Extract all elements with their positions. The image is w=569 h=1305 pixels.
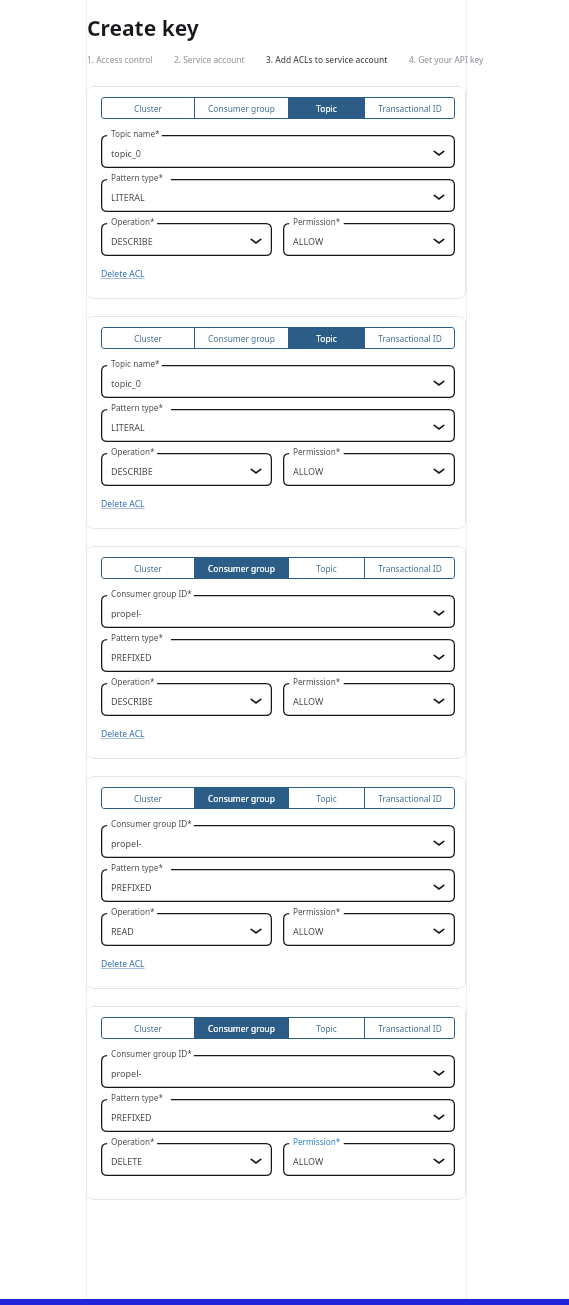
button[interactable]: Pattern type* xyxy=(101,172,455,212)
button[interactable]: Cluster xyxy=(101,1017,194,1039)
staticText: propel- xyxy=(111,837,142,849)
staticText: Permission* xyxy=(293,676,341,687)
button[interactable]: Cluster xyxy=(101,327,194,349)
staticText: propel- xyxy=(111,1067,142,1079)
staticText: Consumer group xyxy=(208,793,275,804)
button[interactable]: Permission* xyxy=(283,676,455,716)
button[interactable]: Transactional ID xyxy=(365,1017,455,1039)
button[interactable]: 1. Access control xyxy=(87,54,153,65)
button[interactable]: Topic xyxy=(289,557,364,579)
button[interactable]: Transactional ID xyxy=(365,787,455,809)
staticText: Pattern type* xyxy=(111,862,163,873)
button[interactable]: Consumer group xyxy=(195,97,288,119)
button[interactable]: Delete ACL xyxy=(101,727,145,741)
button[interactable]: Topic xyxy=(289,1017,364,1039)
staticText: ALLOW xyxy=(293,1155,324,1167)
staticText: Permission* xyxy=(293,906,341,917)
staticText: Operation* xyxy=(111,1136,155,1147)
button[interactable]: Consumer group xyxy=(195,787,288,809)
staticText: Consumer group xyxy=(208,333,275,344)
staticText: Create key xyxy=(87,14,199,43)
staticText: Delete ACL xyxy=(101,728,145,740)
staticText: ALLOW xyxy=(293,235,324,247)
staticText: 4. Get your API key xyxy=(409,54,484,65)
staticText: Cluster xyxy=(134,103,162,114)
staticText: Permission* xyxy=(293,216,341,227)
staticText: 2. Service account xyxy=(174,54,245,65)
staticText: Topic xyxy=(316,563,337,574)
staticText: Consumer group xyxy=(208,563,275,574)
button[interactable]: Pattern type* xyxy=(101,862,455,902)
button[interactable]: Cluster xyxy=(101,787,194,809)
button[interactable]: Permission* xyxy=(283,906,455,946)
button[interactable]: Operation* xyxy=(101,446,272,486)
staticText: Topic xyxy=(316,333,337,344)
button[interactable]: Cluster xyxy=(101,557,194,579)
button[interactable]: Topic xyxy=(289,787,364,809)
button[interactable]: Delete ACL xyxy=(101,497,145,511)
button[interactable]: 3. Add ACLs to service account xyxy=(266,54,388,65)
button[interactable]: Pattern type* xyxy=(101,632,455,672)
staticText: READ xyxy=(111,925,134,937)
staticText: Delete ACL xyxy=(101,958,145,970)
staticText: LITERAL xyxy=(111,191,145,203)
staticText: Consumer group ID* xyxy=(111,1048,192,1059)
button[interactable]: Pattern type* xyxy=(101,1092,455,1132)
button[interactable]: Transactional ID xyxy=(365,97,455,119)
staticText: LITERAL xyxy=(111,421,145,433)
staticText: Topic xyxy=(316,793,337,804)
button[interactable]: Consumer group xyxy=(195,1017,288,1039)
button[interactable]: Permission* xyxy=(283,446,455,486)
staticText: Consumer group xyxy=(208,103,275,114)
staticText: DESCRIBE xyxy=(111,465,153,477)
staticText: 1. Access control xyxy=(87,54,153,65)
button[interactable]: Transactional ID xyxy=(365,557,455,579)
button[interactable]: Delete ACL xyxy=(101,267,145,281)
staticText: Consumer group ID* xyxy=(111,818,192,829)
button[interactable]: Operation* xyxy=(101,676,272,716)
staticText: Pattern type* xyxy=(111,632,163,643)
button[interactable]: Cluster xyxy=(101,97,194,119)
staticText: Consumer group ID* xyxy=(111,588,192,599)
button[interactable]: Permission* xyxy=(283,216,455,256)
button[interactable]: Transactional ID xyxy=(365,327,455,349)
staticText: topic_0 xyxy=(111,147,142,159)
button[interactable]: Topic name* xyxy=(101,358,455,398)
staticText: Cluster xyxy=(134,333,162,344)
button[interactable]: 4. Get your API key xyxy=(409,54,484,65)
button[interactable]: Permission* xyxy=(283,1136,455,1176)
staticText: ALLOW xyxy=(293,465,324,477)
button[interactable]: Consumer group xyxy=(195,327,288,349)
button[interactable]: Operation* xyxy=(101,216,272,256)
staticText: ALLOW xyxy=(293,695,324,707)
staticText: PREFIXED xyxy=(111,651,152,663)
staticText: Delete ACL xyxy=(101,498,145,510)
button[interactable]: Pattern type* xyxy=(101,402,455,442)
staticText: DESCRIBE xyxy=(111,695,153,707)
staticText: Transactional ID xyxy=(378,333,442,344)
button[interactable]: Topic xyxy=(289,327,364,349)
button[interactable]: 2. Service account xyxy=(174,54,245,65)
staticText: Topic name* xyxy=(111,358,160,369)
staticText: Operation* xyxy=(111,906,155,917)
staticText: Topic name* xyxy=(111,128,160,139)
staticText: Cluster xyxy=(134,793,162,804)
button[interactable]: Topic xyxy=(289,97,364,119)
button[interactable]: Topic name* xyxy=(101,128,455,168)
button[interactable]: Delete ACL xyxy=(101,957,145,971)
staticText: topic_0 xyxy=(111,377,142,389)
staticText: Operation* xyxy=(111,676,155,687)
staticText: Operation* xyxy=(111,446,155,457)
staticText: Transactional ID xyxy=(378,563,442,574)
button[interactable]: Consumer group ID* xyxy=(101,1048,455,1088)
button[interactable]: Consumer group ID* xyxy=(101,588,455,628)
button[interactable]: Consumer group xyxy=(195,557,288,579)
button[interactable]: Operation* xyxy=(101,906,272,946)
staticText: ALLOW xyxy=(293,925,324,937)
button[interactable]: Consumer group ID* xyxy=(101,818,455,858)
staticText: PREFIXED xyxy=(111,1111,152,1123)
staticText: Delete ACL xyxy=(101,268,145,280)
button[interactable]: Operation* xyxy=(101,1136,272,1176)
staticText: Permission* xyxy=(293,446,341,457)
staticText: Pattern type* xyxy=(111,1092,163,1103)
